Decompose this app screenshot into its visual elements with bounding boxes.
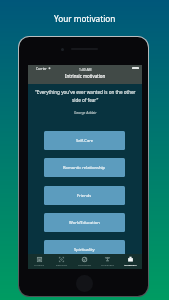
staticText: Spirituality (74, 247, 95, 253)
staticText: George Addair (74, 110, 97, 114)
staticText: Motivation (124, 263, 137, 266)
button[interactable]: Self-Care (44, 131, 125, 150)
staticText: Challenges (101, 263, 114, 266)
staticText: Self-Care (76, 138, 94, 144)
button[interactable]: Baselines (50, 254, 73, 269)
button[interactable]: Completed (73, 254, 96, 269)
button[interactable]: Romantic relationship (44, 158, 125, 177)
staticText: Friends (77, 193, 92, 199)
button[interactable]: Challenges (96, 254, 119, 269)
staticText: Work/Education (69, 220, 100, 226)
staticText: "Everything you've ever wanted is on the… (35, 89, 136, 95)
button[interactable]: Tracking (28, 254, 50, 269)
staticText: Completed (78, 263, 91, 266)
staticText: Carrier (36, 66, 47, 70)
staticText: 1:40 AM (79, 67, 92, 71)
staticText: Romantic relationship (63, 165, 106, 171)
button[interactable]: Motivation (119, 254, 142, 269)
staticText: Intrinsic motivation (65, 73, 106, 79)
staticText: Your motivation (54, 13, 116, 24)
staticText: Baselines (56, 263, 68, 266)
staticText: side of fear" (72, 97, 99, 103)
button[interactable]: Friends (44, 186, 125, 205)
staticText: Tracking (34, 263, 44, 266)
button[interactable]: Spirituality (44, 240, 125, 259)
button[interactable]: Work/Education (44, 213, 125, 232)
